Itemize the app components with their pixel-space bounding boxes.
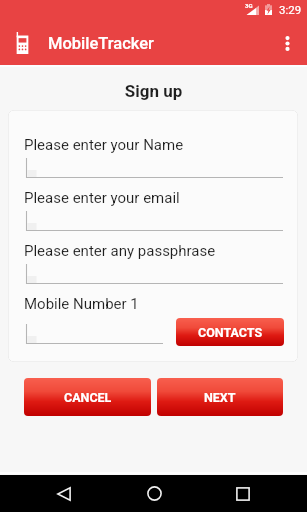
button[interactable]: Back <box>40 478 88 509</box>
staticText: Please enter your Name <box>24 136 184 154</box>
button[interactable]: More options <box>269 21 307 65</box>
button[interactable]: CONTACTS <box>176 318 284 346</box>
staticText: MobileTracker <box>48 34 154 53</box>
staticText: 3:29 <box>279 3 302 16</box>
button[interactable]: Recent apps <box>219 478 267 509</box>
staticText: Sign up <box>0 81 307 101</box>
staticText: Please enter your email <box>24 189 180 207</box>
staticText: NEXT <box>204 390 236 405</box>
staticText: CONTACTS <box>198 325 263 340</box>
staticText: 3G <box>245 2 253 9</box>
button[interactable]: Home <box>130 478 178 509</box>
staticText: CANCEL <box>64 390 112 405</box>
button[interactable]: CANCEL <box>24 378 151 416</box>
staticText: Please enter any passphrase <box>24 242 216 260</box>
staticText: Mobile Number 1 <box>24 295 139 313</box>
button[interactable]: NEXT <box>157 378 283 416</box>
